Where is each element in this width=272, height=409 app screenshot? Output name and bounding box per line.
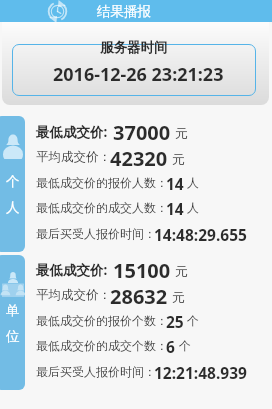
staticText: 14:48:29.655	[154, 224, 247, 245]
staticText: 6	[166, 336, 175, 357]
staticText: 最低成交价的成交个数：	[36, 338, 168, 353]
button[interactable]: 个人	[0, 116, 25, 252]
staticText: 结果播报	[97, 3, 151, 20]
staticText: 42320	[110, 145, 168, 172]
staticText: 人	[187, 200, 199, 215]
staticText: 元	[175, 125, 188, 141]
staticText: 个	[179, 338, 191, 353]
staticText: 15100	[113, 257, 171, 284]
staticText: 单	[6, 302, 20, 319]
staticText: 最低成交价:	[36, 261, 108, 279]
staticText: 最后买受人报价时间：	[36, 226, 156, 241]
staticText: 人	[187, 175, 199, 190]
staticText: 12:21:48.939	[154, 362, 247, 383]
staticText: 元	[172, 151, 185, 167]
button[interactable]	[12, 44, 256, 96]
staticText: 服务器时间	[100, 39, 168, 56]
staticText: 最后买受人报价时间：	[36, 364, 156, 379]
staticText: 最低成交价:	[36, 123, 108, 141]
staticText: 平均成交价：	[36, 149, 111, 165]
staticText: 平均成交价：	[36, 287, 111, 303]
staticText: 位	[6, 328, 20, 345]
staticText: 14	[166, 173, 184, 194]
staticText: 最低成交价的报价人数：	[36, 175, 168, 190]
staticText: 元	[172, 289, 185, 305]
button[interactable]: 单位	[0, 255, 25, 390]
staticText: 最低成交价的报价个数：	[36, 313, 168, 328]
button[interactable]: 刷新时间	[47, 1, 68, 22]
staticText: 28632	[110, 283, 168, 310]
staticText: 个	[6, 173, 20, 190]
staticText: 25	[166, 311, 184, 332]
staticText: 14	[166, 198, 184, 219]
staticText: 最低成交价的成交人数：	[36, 200, 168, 215]
staticText: 元	[175, 263, 188, 279]
staticText: 37000	[113, 119, 171, 146]
staticText: 个	[187, 313, 199, 328]
staticText: 人	[6, 199, 20, 216]
staticText: 2016-12-26 23:21:23	[53, 62, 224, 87]
